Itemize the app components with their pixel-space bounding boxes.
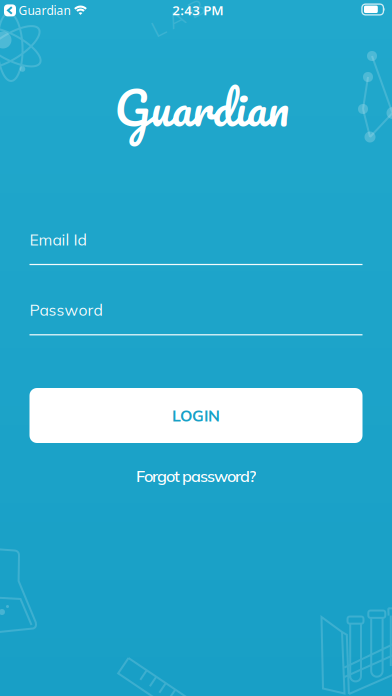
button[interactable]: Email Id [29, 228, 362, 266]
button[interactable]: Password [29, 298, 362, 336]
staticText: L A B [149, 5, 207, 31]
button[interactable]: Back to Guardian [4, 2, 94, 18]
staticText: LOGIN [172, 406, 220, 425]
staticText: 2:43 PM [172, 1, 223, 19]
staticText: Guardian [18, 2, 70, 18]
button[interactable]: LOGIN [29, 388, 362, 443]
staticText: Email Id [29, 230, 86, 249]
button[interactable]: Forgot password? [46, 466, 346, 486]
staticText: Guardian [114, 68, 289, 147]
staticText: Forgot password? [136, 466, 256, 486]
staticText: Password [29, 300, 102, 320]
